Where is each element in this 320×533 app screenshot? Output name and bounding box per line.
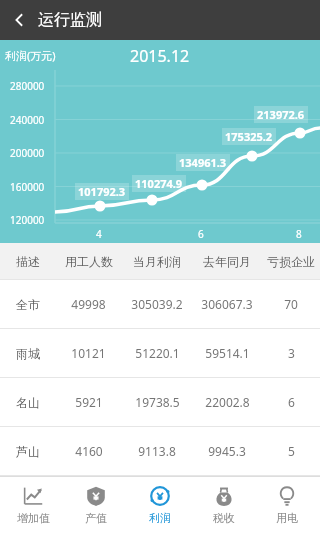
staticText: 200000	[10, 146, 45, 160]
staticText: 芦山	[16, 444, 40, 459]
staticText: 10121	[71, 345, 106, 361]
staticText: 6	[288, 394, 295, 410]
button[interactable]: 芦山	[0, 427, 320, 475]
staticText: 51220.1	[135, 345, 180, 361]
staticText: 雨城	[16, 346, 40, 361]
button[interactable]: 全市	[0, 280, 320, 328]
staticText: 产值	[85, 511, 107, 525]
button[interactable]: 产值	[65, 476, 127, 533]
staticText: 134961.3	[179, 155, 227, 170]
staticText: 59514.1	[205, 345, 250, 361]
button[interactable]: 名山	[0, 378, 320, 426]
button[interactable]: 利润	[129, 476, 191, 533]
staticText: 175325.2	[225, 129, 273, 144]
staticText: 运行监测	[38, 10, 102, 30]
staticText: 3	[288, 345, 295, 361]
staticText: 280000	[10, 79, 45, 93]
button[interactable]: 用电	[256, 476, 318, 533]
staticText: 49998	[71, 296, 106, 312]
staticText: 利润	[149, 511, 171, 525]
staticText: 亏损企业	[267, 254, 315, 269]
staticText: 2015.12	[130, 45, 190, 67]
button[interactable]: Back	[0, 0, 40, 40]
staticText: 120000	[10, 213, 45, 227]
button[interactable]: 税收	[193, 476, 255, 533]
staticText: 6	[198, 227, 204, 241]
staticText: 19738.5	[135, 394, 180, 410]
staticText: 名山	[16, 395, 40, 410]
staticText: 全市	[16, 297, 40, 312]
staticText: 8	[296, 227, 302, 241]
staticText: 增加值	[17, 511, 50, 525]
staticText: 用电	[276, 511, 298, 525]
staticText: 税收	[213, 511, 235, 525]
staticText: 22002.8	[205, 394, 250, 410]
staticText: 213972.6	[257, 107, 305, 122]
staticText: 4160	[75, 443, 103, 459]
staticText: 9113.8	[138, 443, 176, 459]
staticText: 160000	[10, 180, 45, 194]
staticText: 240000	[10, 113, 45, 127]
staticText: 4	[96, 227, 102, 241]
staticText: 5921	[75, 394, 103, 410]
staticText: 110274.9	[135, 176, 183, 191]
staticText: 305039.2	[131, 296, 183, 312]
button[interactable]: 增加值	[2, 476, 64, 533]
staticText: 利润(万元)	[5, 48, 56, 63]
staticText: 当月利润	[133, 254, 181, 269]
staticText: 101792.3	[78, 184, 126, 199]
staticText: 5	[288, 443, 295, 459]
staticText: 描述	[16, 254, 40, 269]
staticText: 70	[284, 296, 298, 312]
button[interactable]: 雨城	[0, 329, 320, 377]
staticText: 去年同月	[203, 254, 251, 269]
staticText: 306067.3	[201, 296, 253, 312]
staticText: 用工人数	[65, 254, 113, 269]
staticText: 9945.3	[208, 443, 246, 459]
